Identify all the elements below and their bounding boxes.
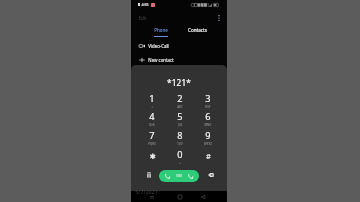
button[interactable]: Back bbox=[196, 191, 210, 202]
staticText: 5/7/2021 bbox=[135, 188, 158, 195]
staticText: *121* bbox=[131, 77, 227, 88]
staticText: # bbox=[206, 151, 211, 161]
staticText: JKL bbox=[178, 123, 183, 127]
staticText: 6 bbox=[205, 110, 211, 123]
staticText: Phone bbox=[154, 27, 168, 33]
button[interactable]: Home bbox=[173, 191, 187, 202]
button[interactable]: Contacts bbox=[179, 27, 216, 37]
staticText: 1 bbox=[149, 92, 155, 105]
staticText: New contact bbox=[148, 57, 174, 63]
staticText: PQRS bbox=[148, 142, 156, 146]
button[interactable]: 7 bbox=[140, 128, 164, 146]
staticText: + bbox=[179, 161, 181, 165]
button[interactable]: 1 bbox=[140, 91, 164, 109]
button[interactable]: 4 bbox=[140, 109, 164, 127]
button[interactable]: 6 bbox=[196, 109, 220, 127]
button[interactable]: 5 bbox=[168, 109, 192, 127]
button[interactable]: More options bbox=[214, 12, 224, 24]
staticText: ∞ bbox=[151, 105, 154, 108]
staticText: 9 bbox=[205, 129, 211, 142]
button[interactable]: New contact bbox=[131, 53, 227, 66]
staticText: SIM bbox=[176, 174, 182, 178]
staticText: ✱ bbox=[149, 152, 156, 160]
staticText: 2 bbox=[177, 92, 183, 105]
staticText: 5 bbox=[177, 110, 183, 123]
button[interactable]: # bbox=[196, 147, 220, 165]
staticText: 4:55 bbox=[141, 2, 149, 7]
button[interactable]: ✱ bbox=[140, 147, 164, 165]
staticText: DEF bbox=[205, 105, 211, 109]
button[interactable]: Backspace bbox=[205, 169, 217, 181]
button[interactable]: Recents bbox=[145, 191, 159, 202]
staticText: 0 bbox=[177, 148, 183, 161]
staticText: GHI bbox=[149, 123, 155, 127]
staticText: ABC bbox=[177, 105, 183, 109]
button[interactable]: Call bbox=[159, 170, 199, 182]
button[interactable]: 9 bbox=[196, 128, 220, 146]
button[interactable]: Phone bbox=[142, 27, 179, 37]
staticText: 8 bbox=[177, 129, 183, 142]
staticText: Video-Call bbox=[148, 43, 169, 49]
staticText: MNO bbox=[204, 123, 212, 127]
staticText: TUV bbox=[177, 142, 183, 146]
staticText: 7 bbox=[149, 129, 155, 142]
button[interactable]: 3 bbox=[196, 91, 220, 109]
staticText: 3 bbox=[205, 92, 211, 105]
staticText: 4 bbox=[149, 110, 155, 123]
button[interactable]: 0 bbox=[168, 147, 192, 165]
staticText: WXYZ bbox=[204, 142, 212, 146]
button[interactable]: 8 bbox=[168, 128, 192, 146]
button[interactable]: Video-Call bbox=[131, 39, 227, 52]
button[interactable]: 2 bbox=[168, 91, 192, 109]
staticText: Edit bbox=[138, 15, 147, 21]
button[interactable]: Video call bbox=[143, 169, 155, 181]
staticText: Contacts bbox=[188, 27, 207, 33]
